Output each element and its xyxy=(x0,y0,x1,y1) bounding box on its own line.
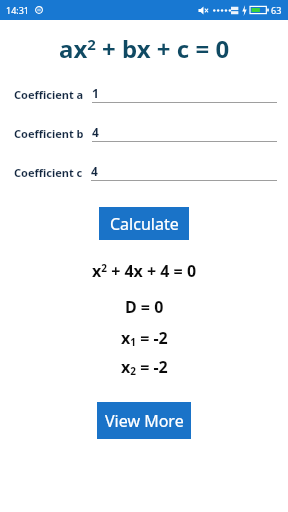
staticText: D = 0 xyxy=(125,296,164,318)
staticText: View More xyxy=(105,410,184,432)
button[interactable]: Coefficient c xyxy=(0,161,288,183)
staticText: Coefficient c xyxy=(14,165,83,180)
staticText: Coefficient a xyxy=(14,87,84,102)
button[interactable]: Coefficient a xyxy=(0,83,288,105)
staticText: Coefficient b xyxy=(14,126,84,141)
staticText: 4 xyxy=(91,163,98,179)
staticText: x2 = -2 xyxy=(121,356,168,378)
button[interactable]: Calculate xyxy=(99,207,189,240)
button[interactable]: Coefficient b xyxy=(0,122,288,144)
staticText: x1 = -2 xyxy=(121,327,168,349)
staticText: Calculate xyxy=(110,213,179,235)
staticText: x2 + 4x + 4 = 0 xyxy=(92,260,197,282)
staticText: 63 xyxy=(271,4,282,16)
staticText: 1 xyxy=(92,85,99,101)
staticText: 4 xyxy=(92,124,99,140)
button[interactable]: View More xyxy=(97,402,191,439)
staticText: 14:31 xyxy=(6,4,30,16)
staticText: ax2 + bx + c = 0 xyxy=(59,32,230,65)
